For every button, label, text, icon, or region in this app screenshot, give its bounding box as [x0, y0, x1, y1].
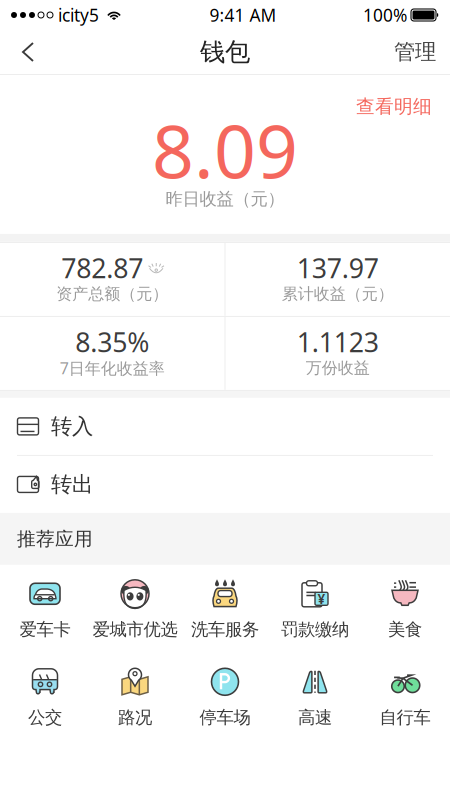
button[interactable]: 公交: [0, 653, 90, 741]
button[interactable]: 转入: [0, 398, 450, 455]
staticText: 7日年化收益率: [60, 357, 165, 378]
staticText: 转入: [51, 413, 93, 439]
button[interactable]: ¥: [270, 565, 360, 653]
button[interactable]: 爱车卡: [0, 565, 90, 653]
staticText: 1.1123: [297, 324, 379, 360]
staticText: 8.35%: [75, 324, 149, 360]
button[interactable]: 自行车: [360, 653, 450, 741]
staticText: 查看明细: [356, 95, 432, 118]
staticText: 公交: [28, 707, 62, 728]
button[interactable]: 查看明细: [338, 87, 450, 126]
staticText: 累计收益（元）: [282, 284, 394, 304]
staticText: 爱车卡: [19, 619, 70, 640]
staticText: 100%: [363, 3, 407, 26]
staticText: 8.09: [152, 101, 298, 199]
button[interactable]: 管理: [380, 27, 450, 77]
staticText: 万份收益: [306, 358, 370, 378]
staticText: 转出: [51, 471, 93, 497]
staticText: 昨日收益（元）: [165, 188, 284, 210]
button[interactable]: 美食: [360, 565, 450, 653]
button[interactable]: 洗车服务: [180, 565, 270, 653]
button[interactable]: 转出: [0, 456, 450, 513]
button[interactable]: 路况: [90, 653, 180, 741]
staticText: 管理: [394, 39, 436, 65]
staticText: icity5: [58, 3, 99, 26]
staticText: 路况: [118, 707, 152, 728]
staticText: 推荐应用: [17, 527, 93, 550]
staticText: ¥: [317, 590, 325, 608]
staticText: 爱城市优选: [92, 619, 177, 640]
staticText: 钱包: [200, 36, 250, 67]
staticText: 停车场: [199, 707, 250, 728]
staticText: 美食: [388, 619, 422, 640]
button[interactable]: 爱城市优选: [90, 565, 180, 653]
staticText: 自行车: [379, 707, 430, 728]
staticText: 罚款缴纳: [281, 619, 349, 640]
staticText: 9:41 AM: [209, 3, 276, 26]
staticText: 782.87: [61, 250, 143, 286]
staticText: 洗车服务: [191, 619, 259, 640]
button[interactable]: 高速: [270, 653, 360, 741]
button[interactable]: Back: [0, 30, 47, 74]
staticText: 高速: [298, 707, 332, 728]
staticText: 137.97: [297, 250, 379, 286]
button[interactable]: 停车场: [180, 653, 270, 741]
staticText: 资产总额（元）: [56, 284, 168, 304]
